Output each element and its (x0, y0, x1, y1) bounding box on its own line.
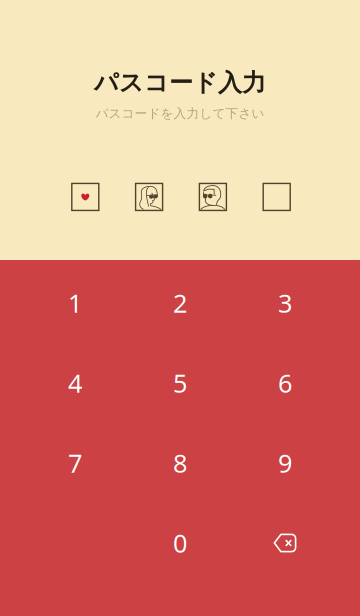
button[interactable]: 0 (127, 503, 232, 583)
button[interactable]: 3 (232, 263, 337, 343)
button[interactable]: Delete (232, 503, 337, 583)
staticText: 1 (68, 286, 82, 320)
staticText: 0 (173, 526, 187, 560)
staticText: パスコードを入力して下さい (95, 105, 264, 121)
button[interactable]: 9 (232, 423, 337, 503)
button[interactable]: 7 (22, 423, 127, 503)
button[interactable]: 1 (22, 263, 127, 343)
button[interactable]: 2 (127, 263, 232, 343)
staticText: 5 (173, 366, 187, 400)
button[interactable]: 5 (127, 343, 232, 423)
button[interactable]: 6 (232, 343, 337, 423)
staticText: 9 (278, 446, 292, 480)
staticText: 7 (68, 446, 82, 480)
staticText: 3 (278, 286, 292, 320)
staticText: パスコード入力 (94, 68, 266, 97)
staticText: 2 (173, 286, 187, 320)
staticText: 8 (173, 446, 187, 480)
button[interactable]: 8 (127, 423, 232, 503)
staticText: 6 (278, 366, 292, 400)
button[interactable]: 4 (22, 343, 127, 423)
staticText: 4 (68, 366, 82, 400)
